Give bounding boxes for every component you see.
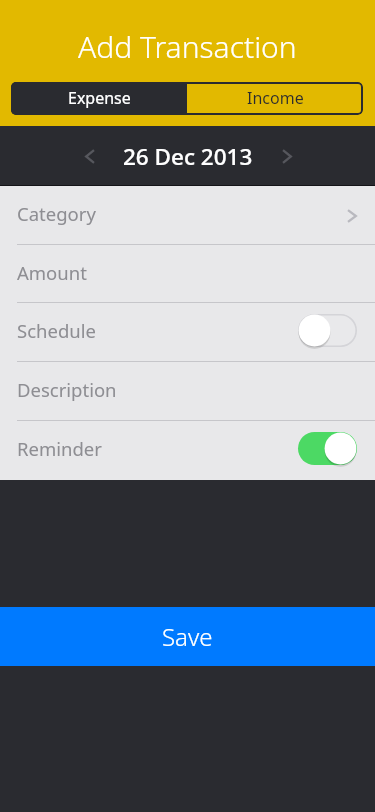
button[interactable]: Next day <box>273 142 301 170</box>
staticText: Category <box>17 201 96 226</box>
button[interactable]: Income <box>187 82 363 115</box>
staticText: Schedule <box>17 318 96 343</box>
staticText: Description <box>17 377 117 402</box>
staticText: 26 Dec 2013 <box>123 141 253 172</box>
button[interactable]: Reminder <box>0 421 375 480</box>
button[interactable]: Previous day <box>75 142 103 170</box>
button[interactable]: Switch on <box>298 432 357 470</box>
staticText: Reminder <box>17 436 102 461</box>
button[interactable]: Description <box>0 362 375 421</box>
button[interactable]: Schedule <box>0 303 375 362</box>
staticText: Add Transaction <box>78 26 297 67</box>
staticText: Amount <box>17 260 87 285</box>
button[interactable]: Save <box>0 607 375 666</box>
button[interactable]: Switch off <box>298 314 357 352</box>
button[interactable]: Category <box>0 186 375 245</box>
button[interactable]: Amount <box>0 245 375 303</box>
staticText: Income <box>247 87 304 109</box>
button[interactable]: Choose category <box>327 201 357 231</box>
button[interactable]: Expense <box>11 82 187 115</box>
staticText: Expense <box>68 87 131 109</box>
staticText: Save <box>162 620 213 653</box>
